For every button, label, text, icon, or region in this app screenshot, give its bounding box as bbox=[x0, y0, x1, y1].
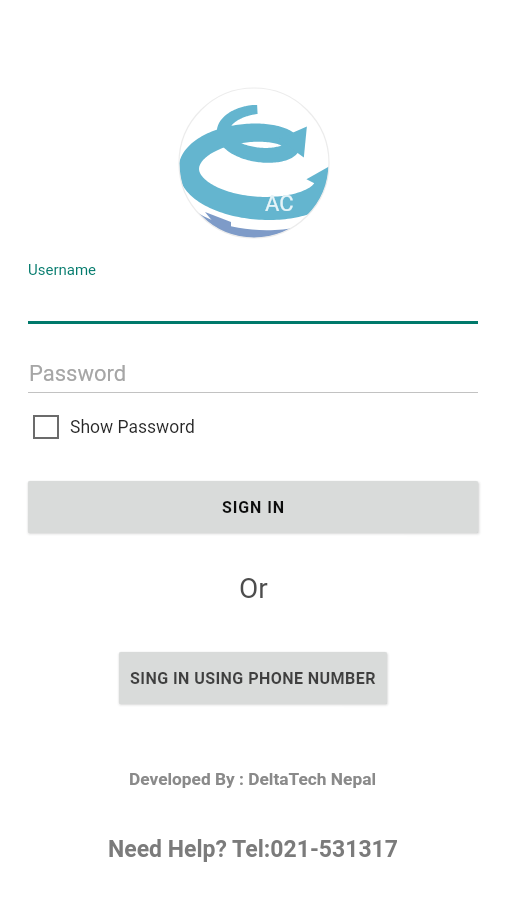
button[interactable]: SING IN USING PHONE NUMBER bbox=[119, 652, 387, 704]
staticText: SING IN USING PHONE NUMBER bbox=[130, 669, 376, 688]
staticText: SIGN IN bbox=[222, 498, 285, 517]
staticText: Show Password bbox=[70, 417, 195, 438]
staticText: Or bbox=[239, 572, 268, 605]
staticText: Developed By : DeltaTech Nepal bbox=[129, 769, 377, 789]
button[interactable]: Show Password bbox=[28, 415, 195, 439]
staticText: Password bbox=[29, 361, 127, 387]
button[interactable]: SIGN IN bbox=[28, 481, 478, 533]
staticText: Need Help? Tel:021-531317 bbox=[108, 836, 399, 863]
staticText: Username bbox=[28, 261, 97, 279]
